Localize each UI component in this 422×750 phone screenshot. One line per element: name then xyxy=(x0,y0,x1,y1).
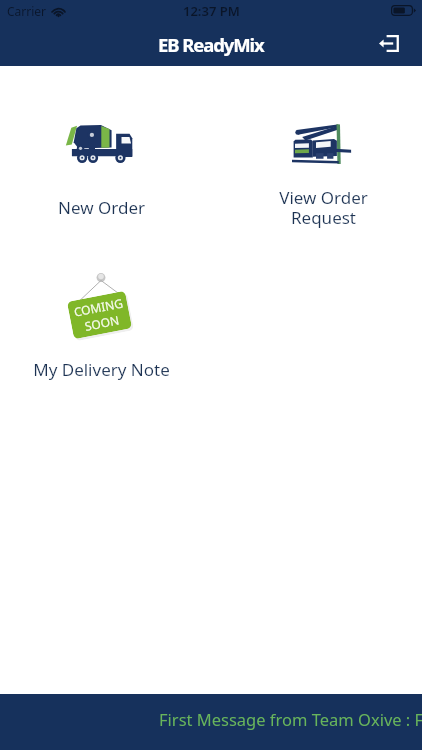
button[interactable]: New Order xyxy=(11,111,191,254)
staticText: My Delivery Note xyxy=(33,358,170,381)
staticText: New Order xyxy=(58,196,145,219)
button[interactable]: View Order Request xyxy=(233,110,413,244)
staticText: View Order Request xyxy=(279,186,368,229)
staticText: SOON xyxy=(83,311,121,334)
staticText: First Message from Team Oxive : F xyxy=(159,708,422,730)
staticText: Carrier xyxy=(7,3,47,19)
button[interactable]: Log out xyxy=(370,24,408,62)
staticText: EB ReadyMix xyxy=(158,32,264,57)
staticText: COMING xyxy=(72,294,124,320)
button[interactable]: COMING xyxy=(11,256,191,416)
staticText: 12:37 PM xyxy=(183,2,240,20)
button[interactable]: First Message from Team Oxive : F xyxy=(0,694,422,750)
